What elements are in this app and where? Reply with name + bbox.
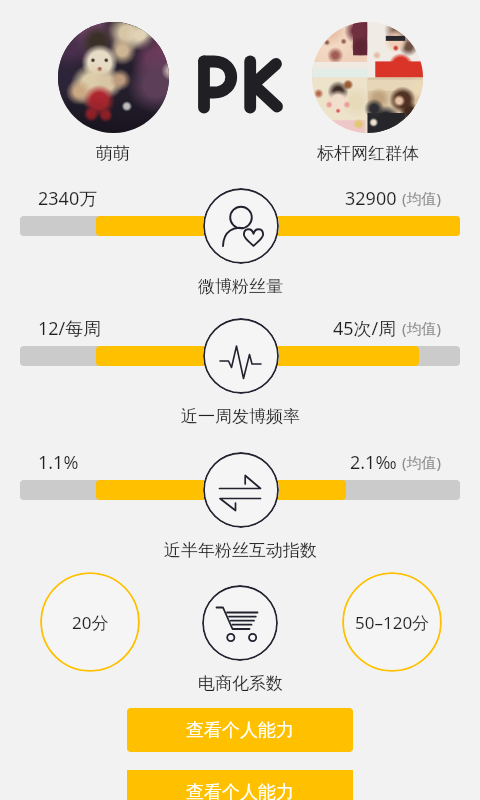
staticText: (均值) (402, 318, 442, 338)
button[interactable]: 电商化系数 (202, 585, 278, 661)
button[interactable]: 近半年粉丝互动指数 (203, 452, 279, 528)
staticText: 45次/周 (333, 316, 397, 340)
staticText: 20分 (72, 611, 109, 634)
staticText: 12/每周 (38, 316, 102, 340)
staticText: 微博粉丝量 (198, 276, 283, 297)
staticText: 近一周发博频率 (181, 406, 300, 427)
staticText: (均值) (402, 188, 442, 208)
button[interactable]: 标杆网红群体 avatar (312, 22, 423, 133)
button[interactable]: 50–120分 (342, 572, 442, 672)
staticText: (均值) (402, 452, 442, 472)
button[interactable]: 查看个人能力 (127, 708, 353, 752)
button[interactable]: 20分 (40, 572, 140, 672)
staticText: 电商化系数 (198, 673, 283, 694)
staticText: 查看个人能力 (186, 719, 294, 742)
staticText: 近半年粉丝互动指数 (164, 540, 317, 561)
button[interactable]: 近一周发博频率 (203, 318, 279, 394)
staticText: 2.1‰ (350, 450, 397, 474)
button[interactable]: 查看个人能力 (127, 770, 353, 800)
staticText: 2340万 (38, 186, 98, 210)
staticText: 1.1% (38, 450, 79, 474)
staticText: 查看个人能力 (186, 781, 294, 800)
staticText: 50–120分 (355, 611, 430, 634)
staticText: 32900 (345, 186, 397, 210)
button[interactable]: 微博粉丝量 (203, 188, 279, 264)
staticText: 萌萌 (96, 143, 130, 164)
staticText: 标杆网红群体 (317, 143, 419, 164)
button[interactable]: 萌萌 avatar (58, 22, 169, 133)
